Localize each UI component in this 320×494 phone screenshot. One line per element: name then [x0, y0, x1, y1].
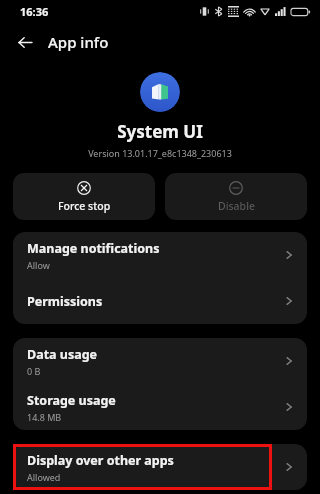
- staticText: Allowed: [27, 471, 61, 483]
- staticText: 14.8 MB: [27, 411, 62, 423]
- button[interactable]: Permissions: [13, 278, 307, 324]
- staticText: Permissions: [27, 293, 103, 310]
- button[interactable]: Force stop: [13, 173, 155, 220]
- staticText: Version 13.01.17_e8c1348_230613: [88, 147, 232, 159]
- staticText: Storage usage: [27, 392, 116, 409]
- staticText: Allow: [27, 259, 50, 271]
- button[interactable]: Storage usage: [13, 384, 307, 430]
- staticText: System UI: [117, 120, 203, 143]
- button[interactable]: Disable: [165, 173, 307, 220]
- button[interactable]: Display over other apps: [13, 444, 307, 490]
- button[interactable]: Data usage: [13, 338, 307, 384]
- staticText: App info: [48, 32, 109, 52]
- staticText: Manage notifications: [27, 240, 160, 257]
- button[interactable]: Manage notifications: [13, 232, 307, 278]
- staticText: 16:36: [20, 4, 49, 19]
- staticText: 0 B: [27, 365, 41, 377]
- staticText: Data usage: [27, 346, 98, 363]
- staticText: Disable: [218, 199, 255, 213]
- staticText: Force stop: [58, 199, 111, 213]
- button[interactable]: Back: [8, 25, 42, 59]
- staticText: Display over other apps: [27, 452, 174, 469]
